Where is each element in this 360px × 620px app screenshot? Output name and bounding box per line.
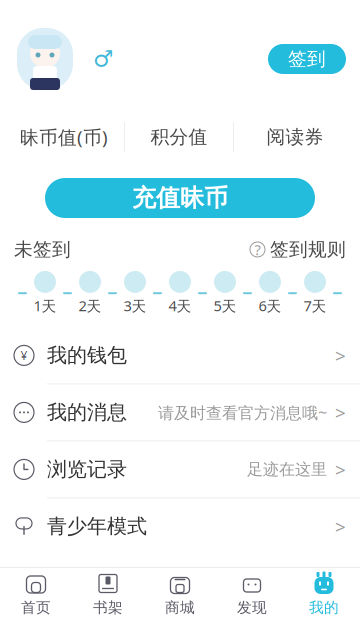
button[interactable]: 性别 — [90, 46, 116, 72]
staticText: 2天 — [78, 296, 101, 315]
staticText: ♂ — [93, 46, 113, 72]
staticText: ¥ — [20, 347, 27, 363]
staticText: > — [335, 400, 346, 425]
staticText: > — [335, 514, 346, 539]
staticText: ? — [254, 240, 260, 259]
button[interactable]: 充值昧币 — [45, 178, 315, 218]
button[interactable]: 昧币值(币) — [4, 118, 124, 156]
button[interactable]: 阅读券 — [234, 118, 356, 156]
button[interactable]: 6天 — [252, 271, 288, 315]
staticText: 青少年模式 — [47, 514, 147, 539]
button[interactable]: 书架 — [72, 568, 144, 620]
staticText: 4天 — [168, 296, 191, 315]
button[interactable]: 7天 — [297, 271, 333, 315]
button[interactable]: 签到 — [268, 44, 346, 74]
button[interactable]: 发现 — [216, 568, 288, 620]
staticText: 7天 — [303, 296, 326, 315]
button[interactable]: 3天 — [117, 271, 153, 315]
staticText: 商城 — [165, 598, 195, 616]
staticText: 签到规则 — [270, 238, 346, 261]
button[interactable]: 5天 — [207, 271, 243, 315]
staticText: 签到 — [288, 47, 326, 70]
staticText: > — [335, 457, 346, 482]
staticText: 充值昧币 — [132, 183, 228, 213]
button[interactable]: 首页 — [0, 568, 72, 620]
button[interactable]: ¥ — [0, 327, 360, 383]
staticText: 发现 — [237, 598, 267, 616]
button[interactable]: 2天 — [72, 271, 108, 315]
button[interactable]: 我的 — [288, 568, 360, 620]
staticText: 昧币值(币) — [20, 125, 108, 149]
staticText: 浏览记录 — [47, 457, 127, 482]
button[interactable]: ? — [250, 238, 346, 261]
button[interactable]: 浏览记录 — [0, 441, 360, 497]
staticText: 我的 — [309, 598, 339, 616]
button[interactable]: 我的消息 — [0, 384, 360, 440]
staticText: 1天 — [33, 296, 56, 315]
staticText: 我的消息 — [47, 400, 127, 425]
staticText: 首页 — [21, 598, 51, 616]
button[interactable]: 4天 — [162, 271, 198, 315]
staticText: 书架 — [93, 598, 123, 616]
staticText: 足迹在这里 — [247, 460, 327, 479]
staticText: 3天 — [123, 296, 146, 315]
button[interactable]: 积分值 — [125, 118, 233, 156]
button[interactable]: 1天 — [27, 271, 63, 315]
staticText: 未签到 — [14, 238, 71, 261]
staticText: 5天 — [213, 296, 236, 315]
staticText: 请及时查看官方消息哦~ — [158, 402, 327, 423]
staticText: 积分值 — [150, 125, 207, 148]
button[interactable]: 商城 — [144, 568, 216, 620]
button[interactable]: 青少年模式 — [0, 498, 360, 554]
staticText: > — [335, 343, 346, 368]
button[interactable]: 头像 — [14, 26, 76, 92]
staticText: 我的钱包 — [47, 343, 127, 368]
staticText: 阅读券 — [266, 125, 323, 148]
staticText: 6天 — [258, 296, 281, 315]
